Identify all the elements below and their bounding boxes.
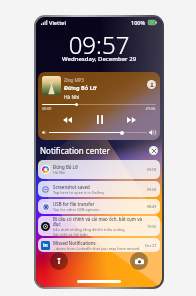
staticText: Sản biết và hải luận (53, 232, 88, 236)
button[interactable]: Rewind (60, 112, 75, 127)
staticText: Tap here to open it in Gallery (53, 190, 105, 195)
staticText: 09:58 (147, 167, 157, 172)
staticText: Wednesday, December 29 (36, 55, 162, 63)
button[interactable]: Pause (92, 112, 107, 127)
staticText: 100% (131, 19, 146, 26)
button[interactable]: Bí cầu có chính và cải mao ốch, bắt cụm … (38, 216, 160, 236)
staticText: Dec 27 (145, 243, 157, 248)
staticText: Zing MP3 (64, 77, 84, 83)
staticText: in (43, 242, 48, 249)
button[interactable]: Clear all notifications (149, 146, 158, 155)
button[interactable]: Screenshot saved (38, 181, 160, 197)
button[interactable]: Camera (130, 252, 148, 270)
staticText: Tap for other USB options. (53, 207, 100, 212)
button[interactable]: in (38, 238, 160, 252)
staticText: Screenshot saved (53, 184, 90, 190)
staticText: hậu dưới những tầng đá khi triều xuống (53, 227, 125, 232)
staticText: Bí cầu có chính và cải mao ốch, bắt cụm … (53, 216, 145, 227)
staticText: -01:55 (145, 106, 156, 111)
staticText: Missed Notifications (53, 240, 96, 246)
button[interactable]: Zing MP3 (38, 72, 160, 140)
staticText: 09:58 (147, 187, 157, 192)
button[interactable]: Fast forward (124, 112, 139, 127)
staticText: 09:57 (36, 28, 162, 61)
button[interactable]: Đừng Bỏ Lỡ (38, 160, 160, 179)
staticText: Hà Nhi (64, 94, 80, 101)
staticText: 00:00 (42, 106, 52, 111)
button[interactable]: Zing MP3 app (147, 80, 156, 89)
staticText: USB for file transfer (53, 201, 95, 207)
staticText: …dates from LinkedIn that you may have m… (53, 246, 140, 251)
staticText: Đừng Bỏ Lỡ (64, 84, 97, 92)
staticText: Notification center (40, 145, 110, 156)
staticText: 19:50 (147, 224, 157, 229)
staticText: 08:49 (147, 204, 157, 209)
button[interactable]: USB for file transfer (38, 199, 160, 214)
staticText: Đừng Bỏ Lỡ (53, 164, 78, 170)
staticText: Viettel (49, 19, 66, 26)
button[interactable]: Flashlight (50, 252, 68, 270)
staticText: Hà Nhi (53, 170, 66, 175)
